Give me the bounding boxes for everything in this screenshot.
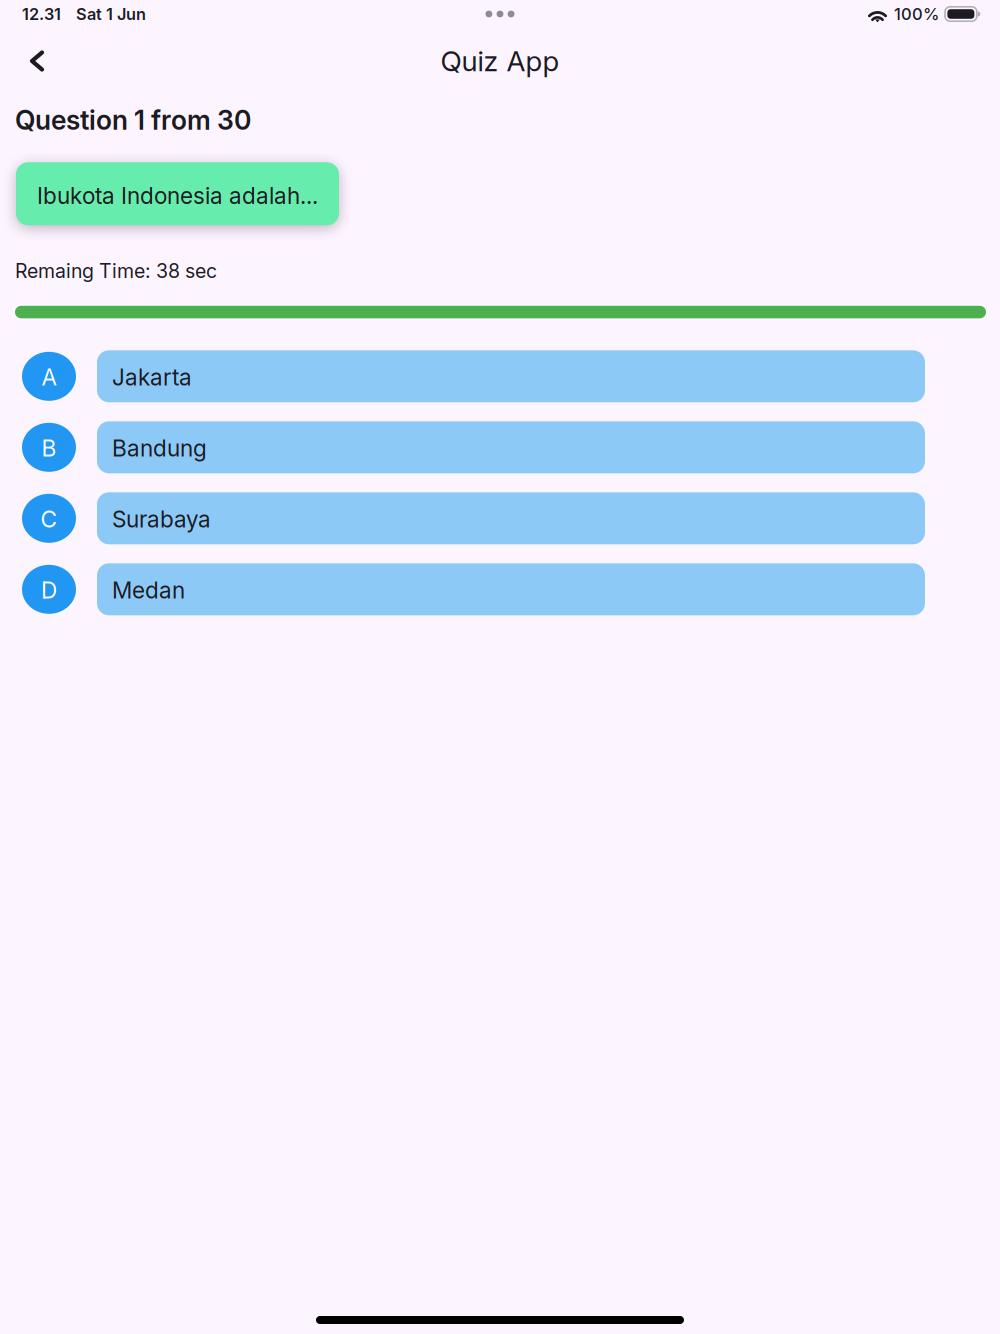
button[interactable]: D	[0, 562, 1000, 616]
staticText: Jakarta	[112, 364, 192, 391]
staticText: Bandung	[112, 435, 207, 462]
staticText: 12.31	[22, 4, 61, 24]
staticText: Sat 1 Jun	[76, 4, 146, 24]
staticText: Surabaya	[112, 506, 211, 533]
staticText: Remaing Time: 38 sec	[15, 259, 217, 283]
staticText: 100%	[894, 4, 939, 24]
staticText: B	[41, 435, 56, 462]
staticText: Medan	[112, 577, 185, 604]
staticText: Question 1 from 30	[15, 104, 251, 136]
staticText: C	[40, 506, 57, 533]
staticText: A	[41, 364, 56, 391]
button[interactable]: C	[0, 491, 1000, 545]
staticText: Quiz App	[440, 44, 559, 78]
staticText: D	[41, 577, 57, 604]
button[interactable]: A	[0, 349, 1000, 403]
button[interactable]: B	[0, 420, 1000, 474]
staticText: Ibukota Indonesia adalah...	[37, 182, 318, 209]
button[interactable]: Back	[15, 39, 59, 83]
